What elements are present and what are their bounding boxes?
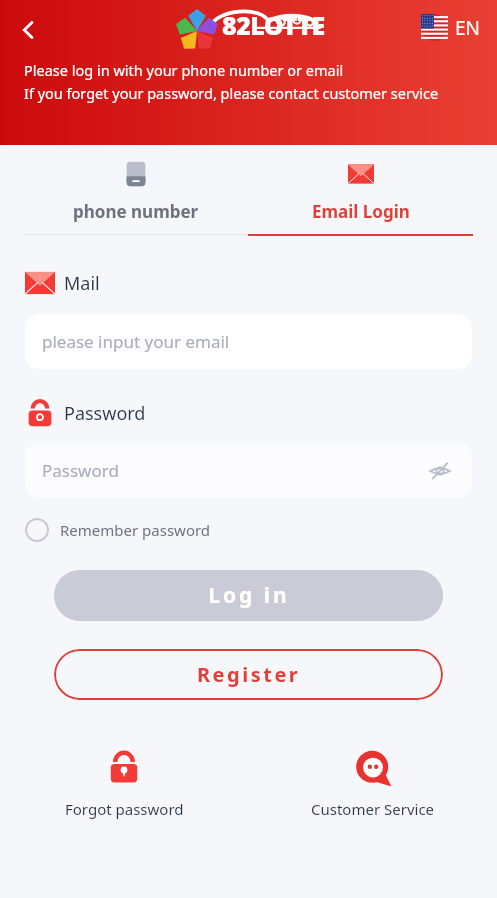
staticText: please input your email — [42, 330, 230, 353]
staticText: Customer Service — [311, 799, 435, 819]
button[interactable]: Email Login — [248, 153, 473, 236]
button[interactable]: please input your email — [25, 314, 472, 369]
staticText: Register — [197, 661, 301, 688]
button[interactable]: Customer Service — [248, 744, 497, 823]
staticText: Remember password — [60, 520, 211, 540]
staticText: Log in — [208, 581, 290, 610]
button[interactable]: phone number — [24, 153, 248, 235]
staticText: Password — [64, 401, 146, 426]
button[interactable]: Register — [54, 649, 443, 700]
staticText: Email Login — [312, 200, 410, 223]
staticText: If you forget your password, please cont… — [24, 83, 439, 103]
staticText: Forgot password — [65, 799, 184, 819]
button[interactable]: Log in — [54, 570, 443, 621]
button[interactable]: Forgot password — [0, 744, 248, 823]
button[interactable]: Remember password — [25, 516, 219, 544]
staticText: Mail — [64, 271, 100, 296]
staticText: 82LOTTERY — [222, 8, 329, 51]
staticText: Please log in with your phone number or … — [24, 60, 344, 80]
staticText: Password — [42, 459, 119, 482]
staticText: EN — [455, 15, 481, 41]
staticText: phone number — [73, 200, 199, 223]
button[interactable]: EN — [417, 10, 485, 45]
button[interactable]: Back — [6, 8, 50, 52]
button[interactable]: Password — [25, 443, 472, 498]
button[interactable]: Show password — [425, 456, 455, 486]
